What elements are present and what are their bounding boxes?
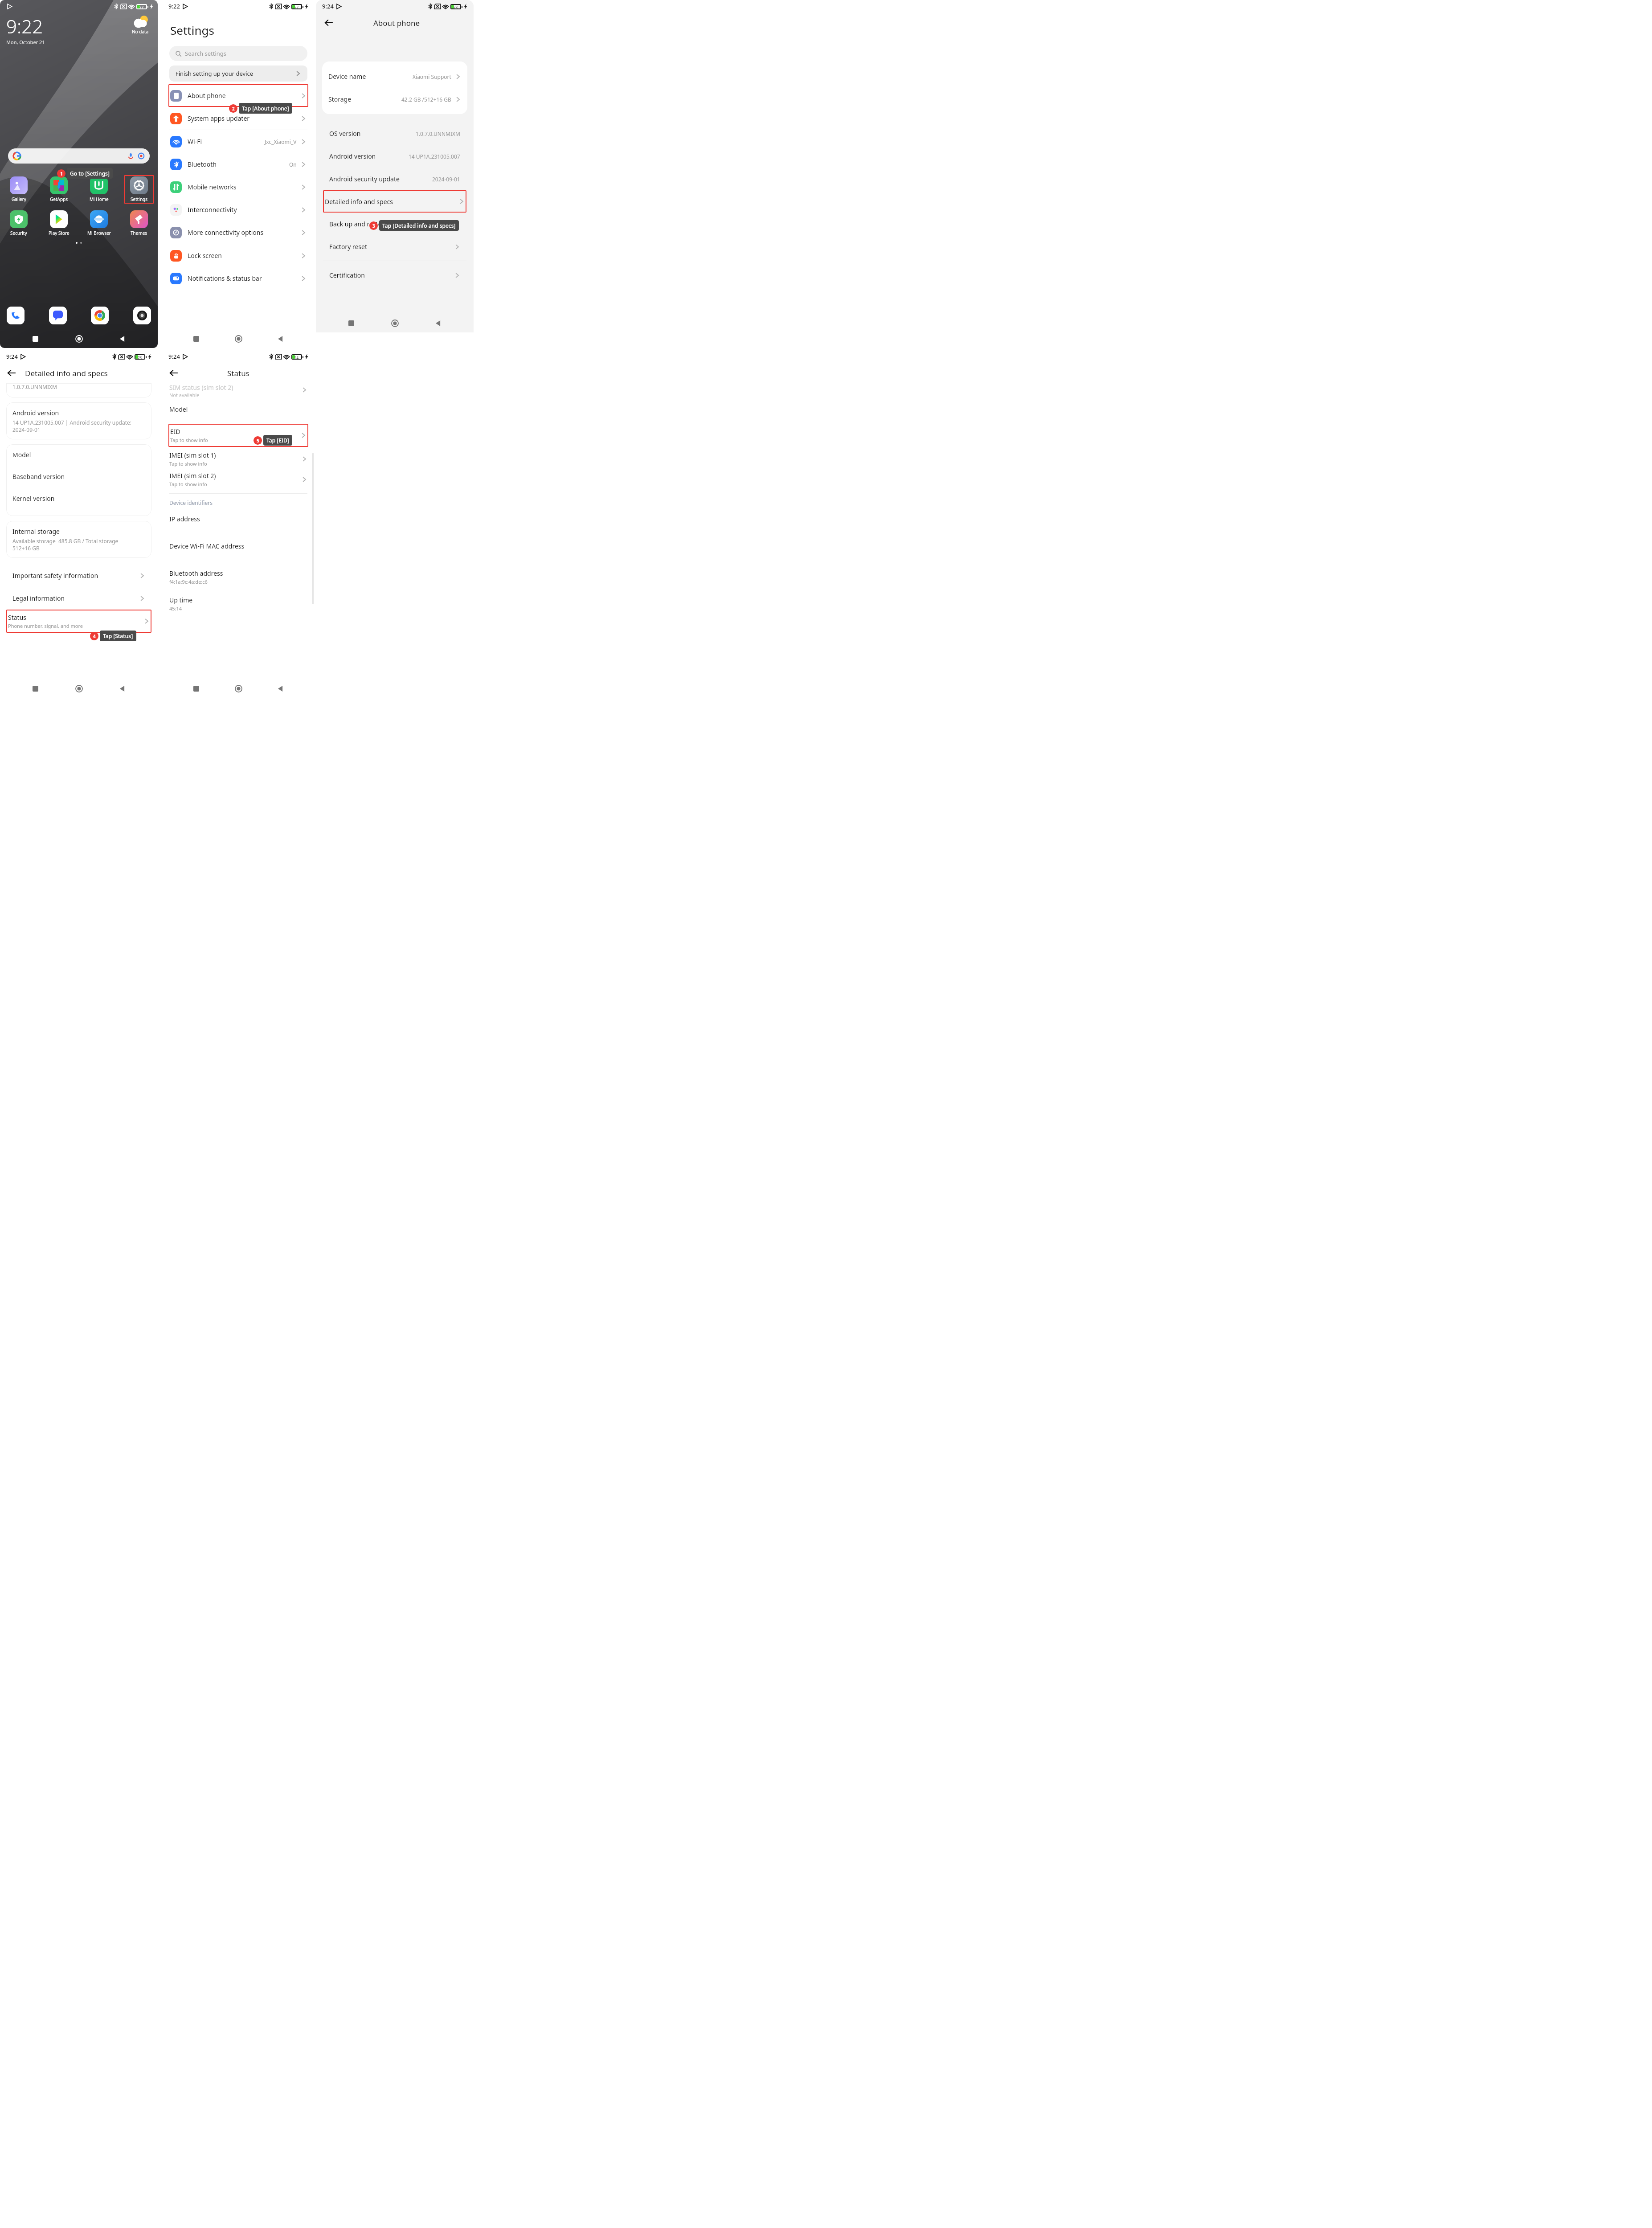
staticText: Tap to show info [169, 460, 207, 467]
button[interactable]: Home [230, 680, 247, 697]
button[interactable]: Mi Home [84, 175, 114, 204]
button[interactable]: OS version [323, 122, 466, 145]
staticText: Settings [131, 196, 148, 202]
button[interactable]: Home [70, 680, 87, 697]
staticText: 4 [93, 633, 96, 639]
button[interactable]: Status [6, 610, 151, 633]
button[interactable]: Mi Browser [84, 209, 114, 238]
staticText: 24 [294, 355, 299, 359]
button[interactable] [8, 148, 150, 164]
button[interactable]: EID [168, 424, 308, 447]
button[interactable]: Factory reset [323, 235, 466, 258]
button[interactable]: Recents [27, 330, 44, 347]
button[interactable]: Recents [27, 680, 44, 697]
staticText: Tap to show info [169, 481, 207, 487]
button[interactable]: IP address [162, 512, 315, 525]
button[interactable]: About phone [168, 84, 308, 107]
button[interactable]: Home [230, 330, 247, 347]
staticText: On [289, 161, 297, 168]
staticText: 1.0.7.0.UNNMIXM [416, 130, 460, 137]
staticText: Tap [EID] [266, 437, 289, 444]
button[interactable]: Back [114, 330, 131, 347]
staticText: 9:24 [322, 2, 334, 10]
button[interactable]: Recents [188, 680, 204, 697]
button[interactable]: More connectivity options [162, 221, 315, 244]
staticText: Phone number, signal, and more [8, 623, 83, 629]
staticText: Mi Browser [87, 230, 111, 236]
staticText: Back up and restore [329, 220, 388, 228]
button[interactable]: Model [162, 403, 315, 416]
button[interactable]: Android version [323, 145, 466, 168]
staticText: System apps updater [188, 114, 250, 123]
button[interactable]: Wi-Fi [162, 130, 315, 153]
button[interactable]: Finish setting up your device [169, 66, 307, 82]
button[interactable]: Bluetooth [162, 153, 315, 176]
button[interactable]: Android security update [323, 168, 466, 190]
button[interactable]: Back [272, 680, 289, 697]
staticText: Status [8, 613, 27, 622]
button[interactable]: Storage [322, 88, 467, 111]
staticText: Tap [Detailed info and specs] [382, 222, 456, 229]
staticText: Search settings [185, 49, 227, 57]
button[interactable]: Legal information [6, 587, 151, 610]
button[interactable]: Back [272, 330, 289, 347]
button[interactable]: Mobile networks [162, 176, 315, 198]
button[interactable]: Recents [343, 315, 360, 332]
staticText: Detailed info and specs [325, 197, 393, 206]
button[interactable] [90, 305, 110, 326]
staticText: Important safety information [12, 571, 98, 580]
staticText: More connectivity options [188, 228, 264, 237]
button[interactable]: Back [167, 366, 181, 380]
staticText: Tap to show info [170, 437, 208, 443]
button[interactable] [5, 305, 26, 326]
staticText: 9:22 [168, 2, 180, 10]
staticText: About phone [373, 18, 420, 28]
button[interactable]: Important safety information [6, 564, 151, 587]
button[interactable]: Play Store [44, 209, 74, 238]
button[interactable]: Interconnectivity [162, 198, 315, 221]
button[interactable]: IMEI (sim slot 1) [162, 449, 315, 469]
button[interactable]: GetApps [44, 175, 74, 204]
button[interactable]: SIM status (sim slot 2) [162, 383, 315, 397]
button[interactable]: Back [4, 366, 19, 380]
staticText: Android version [329, 152, 376, 160]
staticText: Android security update [329, 175, 400, 183]
button[interactable]: Settings [124, 175, 154, 204]
staticText: Baseband version [12, 472, 65, 481]
staticText: Go to [Settings] [70, 170, 110, 177]
button[interactable]: Device Wi-Fi MAC address [162, 540, 315, 553]
button[interactable]: Search settings [169, 46, 307, 61]
button[interactable]: Home [70, 330, 87, 347]
staticText: Play Store [49, 230, 70, 236]
button[interactable]: Themes [124, 209, 154, 238]
button[interactable]: Back [322, 16, 335, 29]
staticText: Themes [131, 230, 147, 236]
staticText: About phone [188, 91, 226, 100]
button[interactable] [48, 305, 68, 326]
button[interactable]: Notifications & status bar [162, 267, 315, 290]
staticText: 9:22 [6, 13, 43, 39]
button[interactable]: Gallery [4, 175, 34, 204]
button[interactable]: Home [386, 315, 403, 332]
staticText: IMEI (sim slot 2) [169, 471, 216, 480]
button[interactable]: Back up and restore [323, 213, 466, 235]
button[interactable]: Recents [188, 330, 204, 347]
staticText: Legal information [12, 594, 65, 602]
button[interactable] [132, 305, 152, 326]
other: Back [7, 368, 16, 378]
staticText: GetApps [50, 196, 68, 202]
button[interactable]: Up time [162, 594, 315, 614]
button[interactable]: Certification [323, 264, 466, 287]
staticText: Status [227, 368, 249, 378]
button[interactable]: Back [114, 680, 131, 697]
button[interactable]: Device name [322, 65, 467, 88]
button[interactable]: Detailed info and specs [323, 190, 466, 213]
button[interactable]: Bluetooth address [162, 567, 315, 587]
button[interactable]: Lock screen [162, 244, 315, 267]
staticText: Detailed info and specs [25, 368, 108, 378]
staticText: Device name [328, 72, 366, 81]
button[interactable]: Back [430, 315, 447, 332]
button[interactable]: Security [4, 209, 34, 238]
button[interactable]: System apps updater [162, 107, 315, 130]
button[interactable]: IMEI (sim slot 2) [162, 469, 315, 490]
